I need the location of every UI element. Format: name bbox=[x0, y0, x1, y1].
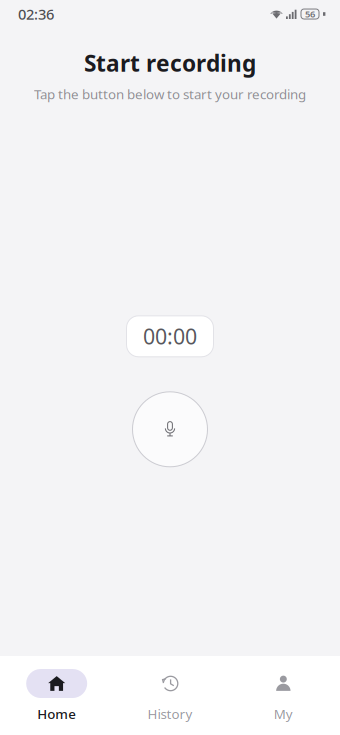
button[interactable]: My bbox=[227, 656, 340, 735]
staticText: 00:00 bbox=[143, 322, 197, 350]
button[interactable]: Home bbox=[0, 656, 113, 735]
staticText: My bbox=[274, 705, 293, 723]
staticText: 02:36 bbox=[18, 4, 54, 24]
staticText: Tap the button below to start your recor… bbox=[34, 85, 306, 103]
button[interactable]: Start recording bbox=[132, 392, 207, 467]
staticText: 56 bbox=[305, 8, 315, 20]
button[interactable]: History bbox=[113, 656, 227, 735]
staticText: Start recording bbox=[84, 48, 256, 78]
staticText: Home bbox=[37, 705, 76, 723]
staticText: History bbox=[147, 705, 192, 723]
